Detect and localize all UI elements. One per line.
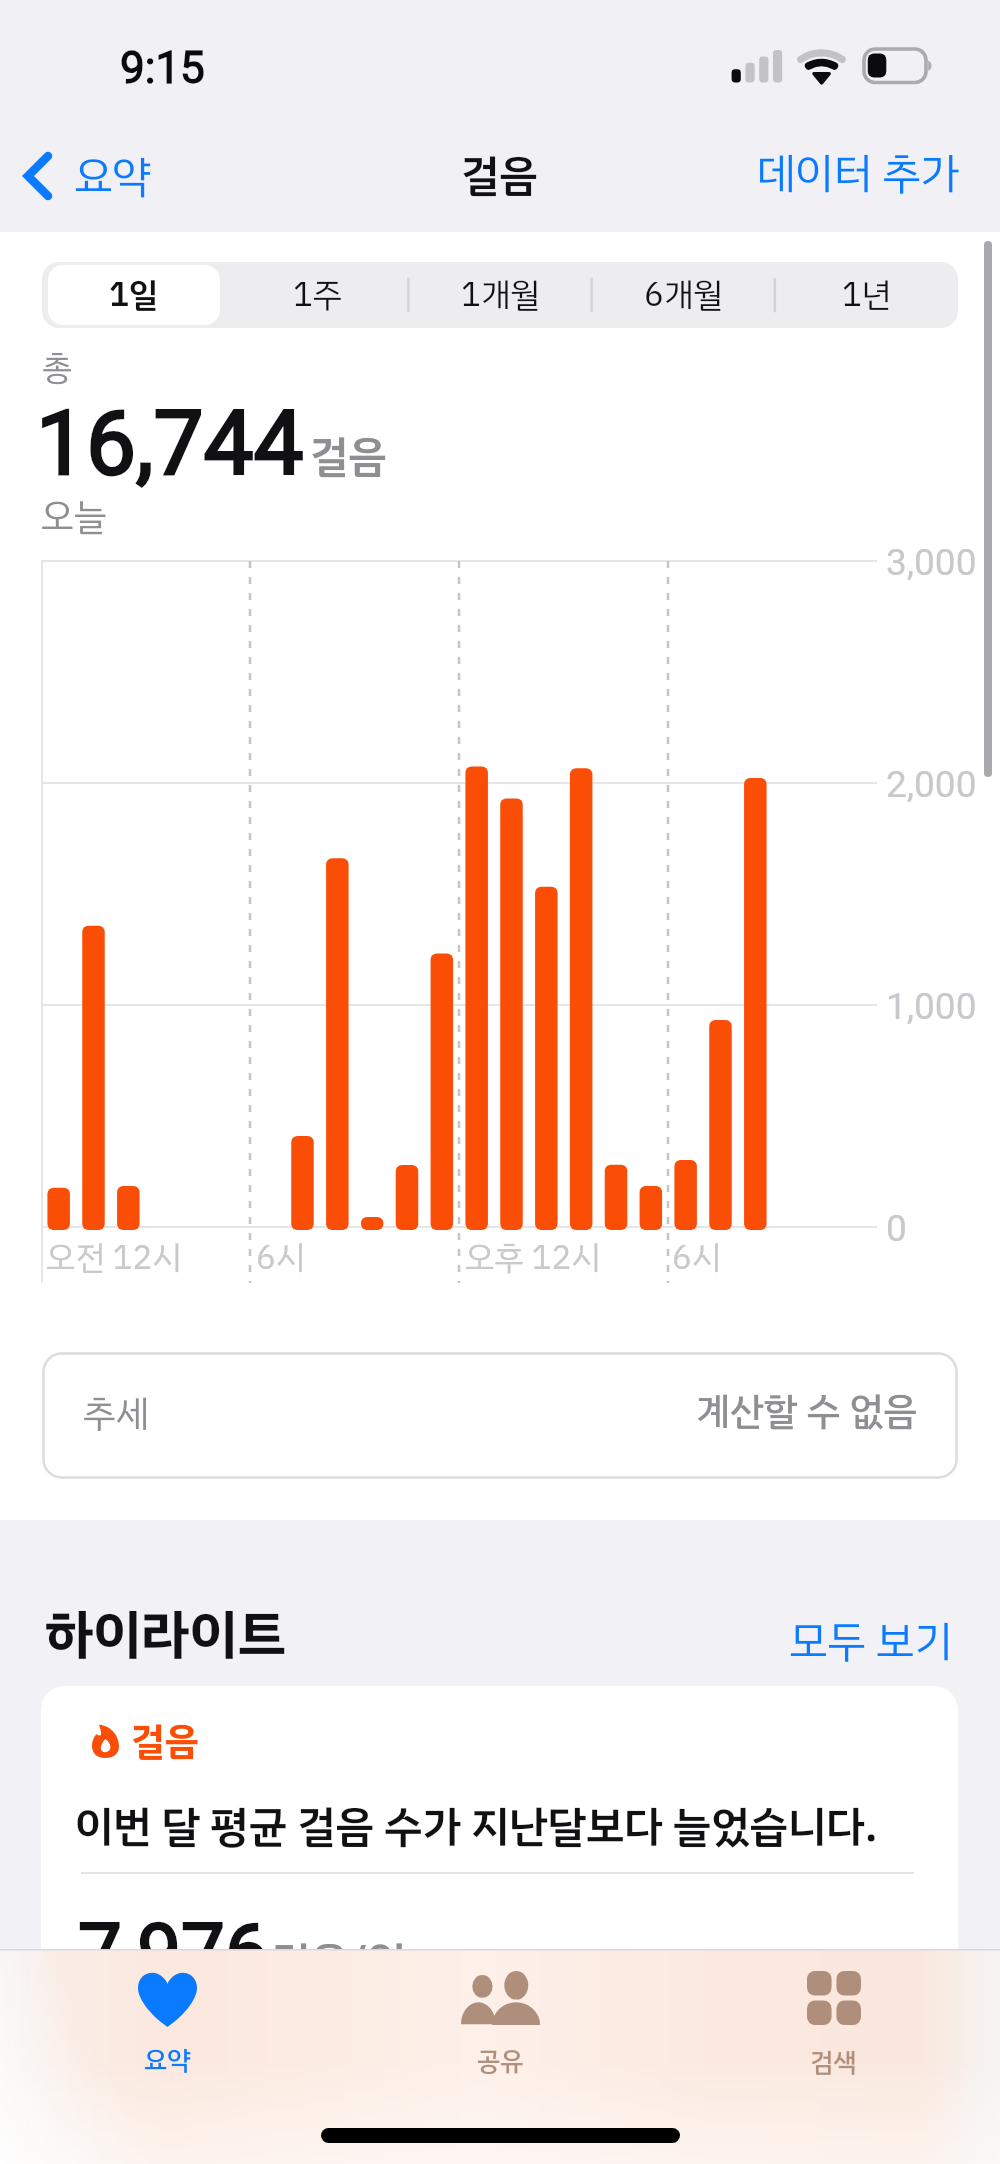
staticText: 오늘 [41, 489, 108, 545]
staticText: 1,000 [886, 985, 977, 1028]
staticText: 7,976 [78, 1907, 269, 1998]
staticText: 요약 [144, 2041, 191, 2080]
staticText: 0 [886, 1207, 907, 1250]
staticText: 1일 [109, 270, 159, 320]
staticText: 하이라이트 [45, 1594, 286, 1675]
staticText: 9:15 [120, 42, 205, 94]
button[interactable]: 1주 [226, 262, 409, 328]
staticText: 16,744 [36, 391, 304, 495]
staticText: 요약 [74, 144, 151, 209]
staticText: 6시 [256, 1233, 306, 1283]
button[interactable]: 검색 [667, 1971, 1000, 2082]
staticText: 1개월 [461, 270, 540, 320]
staticText: 총 [42, 342, 73, 393]
button[interactable]: 1년 [775, 262, 958, 328]
staticText: 검색 [810, 2043, 857, 2082]
staticText: 계산할 수 없음 [696, 1383, 918, 1440]
staticText: 오후 12시 [465, 1233, 601, 1283]
button[interactable]: 6개월 [592, 262, 775, 328]
staticText: 1년 [842, 270, 892, 320]
button[interactable]: 추세 [42, 1352, 958, 1479]
button[interactable]: 모두 보기 [789, 1609, 953, 1674]
button[interactable]: 요약 [0, 1971, 334, 2080]
staticText: 걸음 [310, 424, 387, 489]
staticText: 3,000 [886, 541, 977, 584]
button[interactable]: 1일 [42, 262, 226, 328]
staticText: 오전 12시 [46, 1233, 182, 1283]
staticText: 걸음 [461, 143, 538, 208]
button[interactable]: 1개월 [409, 262, 592, 328]
staticText: 1주 [293, 270, 343, 320]
staticText: 걸음/일 [272, 1930, 406, 1995]
staticText: 6시 [672, 1233, 722, 1283]
staticText: 걸음 [131, 1713, 199, 1770]
button[interactable]: 걸음 [41, 1686, 958, 2016]
staticText: 2,000 [886, 763, 977, 806]
staticText: 공유 [477, 2042, 524, 2081]
staticText: 이번 달 평균 걸음 수가 지난달보다 늘었습니다. [75, 1794, 878, 1859]
staticText: 6개월 [644, 270, 723, 320]
button[interactable]: 요약 [10, 136, 161, 221]
button[interactable]: 데이터 추가 [757, 141, 959, 206]
button[interactable]: 공유 [334, 1971, 667, 2081]
staticText: 추세 [83, 1386, 150, 1442]
